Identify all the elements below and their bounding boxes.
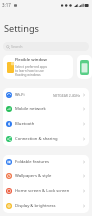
staticText: Search bbox=[11, 44, 23, 49]
staticText: Flexible window bbox=[15, 57, 47, 63]
staticText: Settings bbox=[4, 22, 39, 34]
staticText: Display & brightness bbox=[15, 203, 56, 209]
button[interactable]: Mobile network bbox=[3, 102, 89, 116]
button[interactable]: Search bbox=[3, 42, 89, 51]
staticText: Connection & sharing bbox=[15, 136, 58, 142]
staticText: Select preferred apps to learn how to us… bbox=[15, 65, 49, 77]
button[interactable]: Bluetooth bbox=[3, 116, 89, 131]
staticText: Mobile network bbox=[15, 106, 46, 112]
button[interactable]: Home screen & Lock screen bbox=[3, 183, 89, 198]
staticText: Bluetooth bbox=[15, 121, 35, 127]
button[interactable]: Foldable features bbox=[3, 155, 89, 169]
staticText: 3:17 bbox=[2, 2, 11, 8]
staticText: NETGEAR 2.4GHz bbox=[53, 93, 81, 98]
button[interactable]: Display & brightness bbox=[3, 198, 89, 213]
button[interactable]: Connection & sharing bbox=[3, 131, 89, 146]
button[interactable]: Flexible window bbox=[3, 55, 73, 79]
button[interactable]: Wallpapers & style bbox=[3, 169, 89, 183]
staticText: Home screen & Lock screen bbox=[15, 188, 70, 194]
staticText: Wallpapers & style bbox=[15, 173, 52, 179]
staticText: Wi-Fi bbox=[15, 92, 25, 98]
button[interactable]: Wi-Fi bbox=[3, 88, 89, 102]
button[interactable]: Device options bbox=[77, 55, 92, 79]
staticText: Foldable features bbox=[15, 159, 50, 165]
